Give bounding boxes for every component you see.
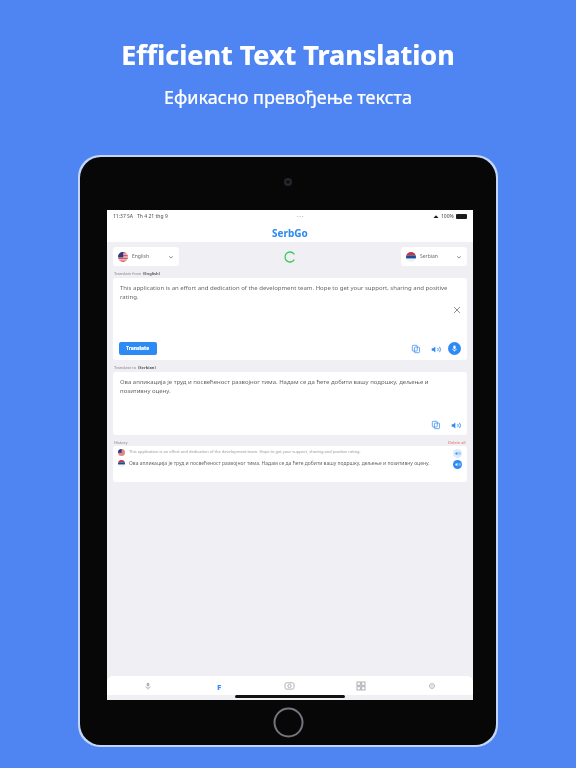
staticText: Translate from bbox=[114, 271, 143, 276]
staticText: Ефикасно превођење текста bbox=[164, 85, 412, 110]
button[interactable]: Translate bbox=[119, 342, 157, 355]
button[interactable]: Voice input bbox=[448, 342, 461, 355]
button[interactable]: Settings bbox=[396, 676, 467, 695]
staticText: Serbian bbox=[420, 253, 438, 260]
staticText: This application is an effort and dedica… bbox=[129, 449, 450, 454]
staticText: Delete all bbox=[448, 440, 466, 445]
staticText: 100% bbox=[441, 213, 454, 220]
staticText: This application is an effort and dedica… bbox=[120, 284, 455, 301]
button[interactable]: Delete all bbox=[448, 440, 466, 445]
staticText: • • • bbox=[297, 214, 304, 219]
staticText: 11:37 SA Th 4 21 thg 9 bbox=[113, 213, 168, 220]
staticText: Translate bbox=[126, 345, 150, 352]
button[interactable]: Speak translation bbox=[449, 419, 461, 431]
staticText: Efficient Text Translation bbox=[121, 36, 455, 73]
button[interactable]: Voice bbox=[113, 676, 183, 695]
button[interactable]: Serbian bbox=[401, 247, 467, 266]
button[interactable]: Text bbox=[183, 676, 254, 695]
staticText: Translate to bbox=[114, 365, 138, 370]
staticText: (English) bbox=[143, 271, 161, 276]
staticText: E bbox=[217, 682, 222, 690]
button[interactable]: English bbox=[113, 247, 179, 266]
button[interactable]: Speak bbox=[429, 343, 441, 355]
button[interactable]: Play translation bbox=[453, 460, 462, 469]
staticText: SerbGo bbox=[272, 226, 308, 240]
button[interactable]: Clear text bbox=[451, 304, 463, 316]
staticText: Ова апликација је труд и посвећеност раз… bbox=[120, 378, 457, 395]
button[interactable]: Swap languages bbox=[282, 249, 298, 265]
button[interactable]: Copy translation bbox=[430, 419, 442, 431]
staticText: (Serbian) bbox=[138, 365, 156, 370]
staticText: English bbox=[132, 253, 150, 260]
staticText: History bbox=[114, 440, 128, 445]
staticText: Ова апликација је труд и посвећеност раз… bbox=[129, 460, 450, 467]
button[interactable]: Scan bbox=[325, 676, 396, 695]
button[interactable]: Camera bbox=[254, 676, 325, 695]
button[interactable]: Copy bbox=[410, 343, 422, 355]
button[interactable]: Play source bbox=[453, 449, 462, 458]
